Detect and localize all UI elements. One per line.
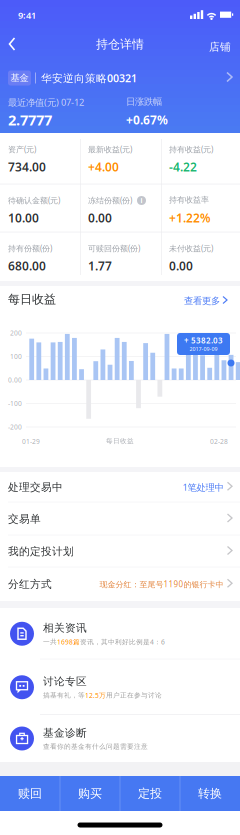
staticText: 现金分红：至尾号1190的银行卡中 xyxy=(99,579,223,589)
staticText: 交易单 xyxy=(8,512,41,525)
staticText: 每日收益 xyxy=(106,437,134,445)
staticText: 最新收益(元) xyxy=(88,144,132,155)
button[interactable]: 讨论专区 xyxy=(0,659,240,715)
staticText: 冻结份额(份) xyxy=(88,195,132,206)
button[interactable]: 查看更多 xyxy=(184,294,229,308)
staticText: 最近净值(元) 07-12 xyxy=(8,96,84,108)
staticText: 购买 xyxy=(78,786,102,801)
button[interactable]: 定投 xyxy=(120,776,180,811)
staticText: 1698篇 xyxy=(57,637,80,646)
staticText: +1.22% xyxy=(169,210,211,226)
staticText: 基金 xyxy=(10,72,28,84)
button[interactable]: 转换 xyxy=(180,776,240,811)
button[interactable]: 冻结份额说明 xyxy=(137,196,146,205)
staticText: 1.77 xyxy=(88,258,112,274)
staticText: 可赎回份额(份) xyxy=(88,243,140,254)
staticText: 持仓详情 xyxy=(96,37,144,52)
staticText: 赎回 xyxy=(18,786,42,801)
staticText: 我的定投计划 xyxy=(8,545,74,558)
staticText: -4.22 xyxy=(169,159,197,175)
staticText: 2017-09-09 xyxy=(189,345,217,353)
staticText: +0.67% xyxy=(126,112,168,128)
staticText: 查看更多 xyxy=(184,295,220,307)
staticText: 734.00 xyxy=(8,159,46,175)
staticText: 用户正在参与讨论 xyxy=(106,691,162,699)
staticText: 转换 xyxy=(198,786,222,801)
staticText: 1笔处理中 xyxy=(182,481,223,493)
staticText: 0.00 xyxy=(88,210,112,226)
staticText: 01-29 xyxy=(22,437,40,446)
staticText: 处理交易中 xyxy=(8,481,63,494)
staticText: 分红方式 xyxy=(8,578,52,591)
staticText: 200 xyxy=(10,329,22,337)
staticText: 100 xyxy=(10,352,22,361)
staticText: 搞基有礼，等 xyxy=(43,691,85,699)
staticText: 0.00 xyxy=(169,258,193,274)
button[interactable]: 赎回 xyxy=(0,776,60,811)
staticText: 日涨跌幅 xyxy=(126,96,162,107)
button[interactable]: 交易单 xyxy=(0,502,240,535)
button[interactable]: 购买 xyxy=(60,776,120,811)
staticText: 待确认金额(元) xyxy=(8,195,60,206)
staticText: -200 xyxy=(8,423,22,431)
button[interactable]: 基金诊断 xyxy=(0,715,240,762)
button[interactable]: 我的定投计划 xyxy=(0,535,240,567)
staticText: i xyxy=(140,196,142,205)
staticText: 店铺 xyxy=(209,40,231,53)
staticText: 持有份额(份) xyxy=(8,243,52,254)
staticText: 资产(元) xyxy=(8,144,36,155)
button[interactable]: 店铺 xyxy=(203,38,231,56)
staticText: 华安逆向策略00321 xyxy=(41,71,137,85)
staticText: 每日收益 xyxy=(8,292,56,307)
button[interactable]: 相关资讯 xyxy=(0,608,240,659)
staticText: 12.5万 xyxy=(85,691,106,700)
staticText: 一共 xyxy=(43,638,57,646)
button[interactable]: 处理交易中 xyxy=(0,472,240,502)
staticText: 未付收益(元) xyxy=(169,243,213,254)
staticText: 10.00 xyxy=(8,210,39,226)
staticText: 基金诊断 xyxy=(43,726,87,739)
button[interactable]: 基金 xyxy=(8,68,234,88)
staticText: 02-28 xyxy=(210,437,228,446)
staticText: 资讯，其中利好比例是4：6 xyxy=(80,637,165,646)
staticText: -100 xyxy=(8,399,22,408)
button[interactable]: 分红方式 xyxy=(0,567,240,601)
staticText: 680.00 xyxy=(8,258,46,274)
staticText: 相关资讯 xyxy=(43,621,87,634)
staticText: 2.7777 xyxy=(8,110,52,129)
staticText: 0.00 xyxy=(8,376,22,384)
staticText: 9:41 xyxy=(18,9,36,21)
staticText: 查看你的基金有什么问题需要注意 xyxy=(43,742,148,751)
staticText: + 5382.03 xyxy=(184,335,223,346)
staticText: +4.00 xyxy=(88,159,119,175)
staticText: 持有收益率 xyxy=(169,195,209,205)
button[interactable]: Back xyxy=(2,34,22,54)
staticText: 讨论专区 xyxy=(43,675,87,688)
staticText: 持有收益(元) xyxy=(169,144,213,155)
staticText: 定投 xyxy=(138,786,162,801)
